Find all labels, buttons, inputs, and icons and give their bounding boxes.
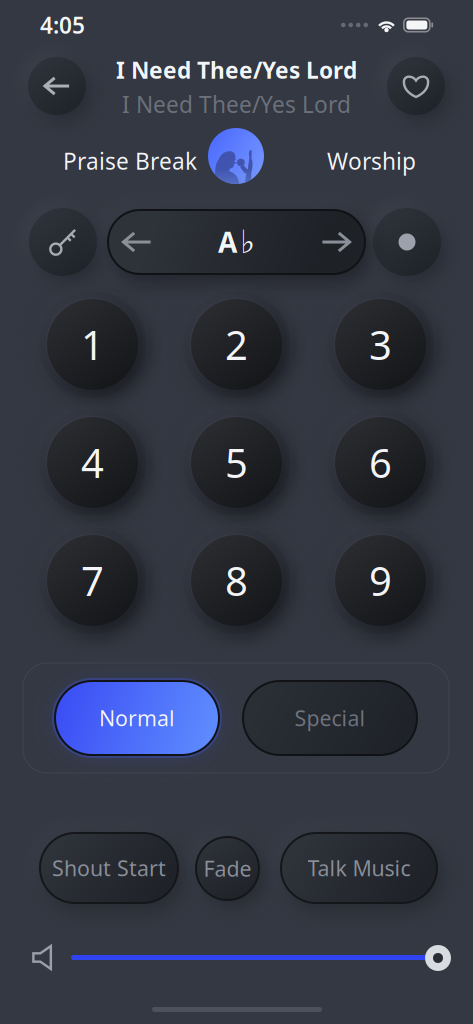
button[interactable]: Key signature: [29, 208, 97, 276]
button[interactable]: Special: [242, 680, 418, 756]
staticText: 7: [81, 554, 104, 607]
button[interactable]: 4: [47, 417, 138, 508]
staticText: Special: [294, 704, 365, 732]
button[interactable]: 6: [335, 417, 426, 508]
button[interactable]: 3: [335, 299, 426, 390]
button[interactable]: Record: [373, 208, 441, 276]
staticText: 4:05: [40, 10, 85, 40]
button[interactable]: 7: [47, 535, 138, 626]
staticText: I Need Thee/Yes Lord: [122, 89, 351, 119]
staticText: Fade: [203, 854, 251, 883]
staticText: Talk Music: [307, 854, 410, 882]
staticText: 9: [369, 554, 392, 607]
staticText: A: [218, 223, 237, 261]
staticText: ♭: [240, 224, 255, 260]
button[interactable]: Worship: [321, 140, 422, 182]
staticText: Praise Break: [63, 146, 197, 176]
staticText: 2: [225, 318, 248, 371]
button[interactable]: Back: [28, 57, 86, 115]
button[interactable]: 2: [191, 299, 282, 390]
staticText: 1: [81, 318, 104, 371]
staticText: I Need Thee/Yes Lord: [116, 55, 357, 85]
staticText: Shout Start: [52, 854, 166, 882]
button[interactable]: 8: [191, 535, 282, 626]
button[interactable]: 9: [335, 535, 426, 626]
button[interactable]: Previous key: [107, 209, 167, 275]
staticText: Worship: [327, 146, 416, 176]
button[interactable]: 1: [47, 299, 138, 390]
button[interactable]: Talk Music: [280, 832, 438, 904]
staticText: 4: [81, 436, 104, 489]
button[interactable]: Next key: [306, 209, 366, 275]
staticText: 5: [225, 436, 248, 489]
staticText: Normal: [99, 704, 175, 732]
button[interactable]: Normal: [54, 678, 220, 758]
staticText: 6: [369, 436, 392, 489]
button[interactable]: Fade: [195, 836, 260, 901]
staticText: 8: [225, 554, 248, 607]
button[interactable]: Praise Break: [57, 140, 203, 182]
button[interactable]: 5: [191, 417, 282, 508]
button[interactable]: Favorite: [387, 57, 445, 115]
staticText: 3: [369, 318, 392, 371]
button[interactable]: Shout Start: [39, 832, 179, 904]
